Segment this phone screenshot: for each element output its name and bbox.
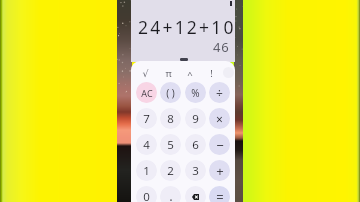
staticText: 2 [167, 163, 174, 179]
button[interactable]: √ [136, 64, 154, 82]
button[interactable]: − [209, 134, 230, 155]
button[interactable]: 7 [136, 108, 157, 129]
staticText: 8 [167, 111, 174, 127]
staticText: AC [141, 87, 153, 99]
staticText: 6 [192, 137, 199, 153]
staticText: ^ [187, 68, 193, 81]
button[interactable]: 3 [185, 160, 206, 181]
staticText: ! [210, 67, 213, 80]
button[interactable]: AC [136, 82, 157, 103]
staticText: . [169, 187, 173, 202]
button[interactable]: ( ) [160, 82, 181, 103]
button[interactable]: More functions [223, 67, 234, 78]
staticText: + [216, 162, 224, 180]
button[interactable]: ! [202, 64, 220, 82]
button[interactable]: 1 [136, 160, 157, 181]
button[interactable]: + [209, 160, 230, 181]
button[interactable]: × [209, 108, 230, 129]
button[interactable]: 9 [185, 108, 206, 129]
staticText: π [165, 67, 172, 80]
button[interactable]: 8 [160, 108, 181, 129]
staticText: ( ) [166, 86, 175, 100]
button[interactable]: 5 [160, 134, 181, 155]
button[interactable]: ^ [181, 64, 199, 82]
staticText: 1 [143, 163, 150, 179]
staticText: 0 [143, 189, 150, 202]
button[interactable]: % [185, 82, 206, 103]
staticText: 24+12+10 [138, 15, 236, 39]
staticText: 3 [192, 163, 199, 179]
staticText: % [191, 86, 200, 100]
staticText: ÷ [216, 85, 223, 101]
staticText: 46 [213, 38, 230, 56]
button[interactable]: 0 [136, 186, 157, 202]
button[interactable]: . [160, 186, 181, 202]
staticText: 4 [143, 137, 150, 153]
staticText: = [216, 188, 224, 202]
staticText: − [216, 136, 224, 154]
button[interactable]: 6 [185, 134, 206, 155]
staticText: 9 [192, 111, 199, 127]
staticText: 5 [167, 137, 174, 153]
staticText: √ [142, 68, 149, 79]
button[interactable]: ÷ [209, 82, 230, 103]
button[interactable]: 4 [136, 134, 157, 155]
staticText: × [216, 111, 223, 127]
button[interactable]: π [159, 64, 177, 82]
staticText: 7 [143, 111, 150, 127]
button[interactable]: Backspace [185, 186, 206, 202]
button[interactable]: 2 [160, 160, 181, 181]
button[interactable]: = [209, 186, 230, 202]
